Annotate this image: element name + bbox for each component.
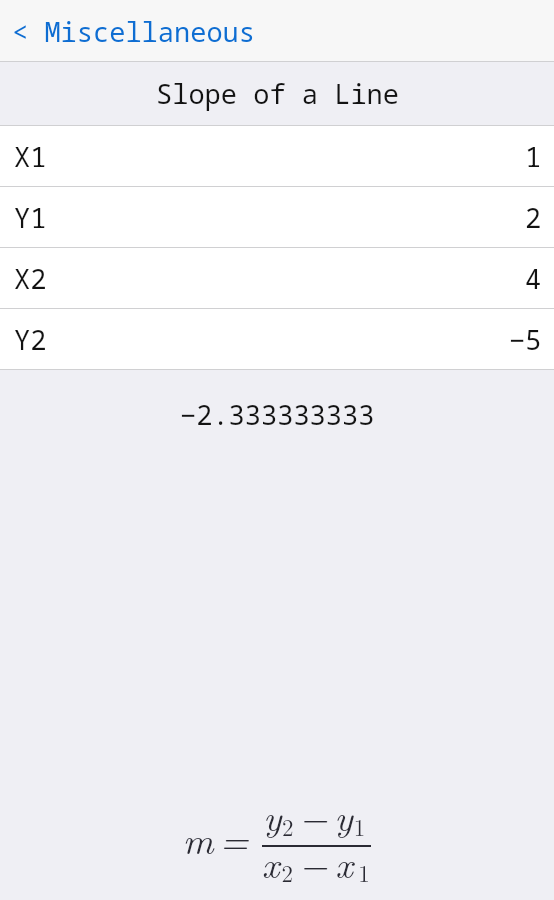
staticText: Slope of a Line — [156, 75, 399, 112]
staticText: 4 — [525, 260, 542, 297]
button[interactable]: X2 — [0, 248, 554, 308]
staticText: 1 — [525, 138, 542, 175]
button[interactable]: Back to Miscellaneous — [0, 3, 271, 58]
staticText: X1 — [14, 138, 47, 175]
button[interactable]: X1 — [0, 126, 554, 186]
staticText: < Miscellaneous — [12, 13, 255, 50]
staticText: X2 — [14, 260, 47, 297]
staticText: −2.333333333 — [180, 396, 375, 433]
button[interactable]: Y2 — [0, 309, 554, 369]
staticText: 2 — [525, 199, 542, 236]
staticText: Y1 — [14, 199, 47, 236]
staticText: Y2 — [14, 321, 47, 358]
button[interactable]: Y1 — [0, 187, 554, 247]
staticText: −5 — [509, 321, 542, 358]
